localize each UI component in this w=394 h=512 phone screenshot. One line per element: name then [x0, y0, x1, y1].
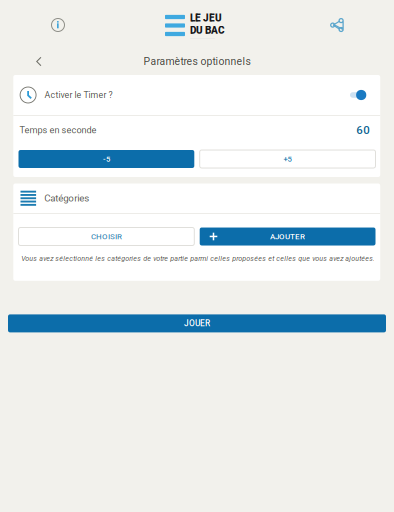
staticText: DU BAC — [190, 24, 225, 36]
staticText: LE JEU — [190, 12, 222, 24]
staticText: -5 — [103, 154, 110, 164]
staticText: ························· — [190, 36, 215, 41]
button[interactable]: Partager — [313, 1, 361, 49]
staticText: CHOISIR — [91, 232, 122, 241]
staticText: Vous avez sélectionné les catégories de … — [21, 254, 375, 263]
button[interactable]: Retour — [26, 48, 52, 75]
staticText: Activer le Timer ? — [44, 90, 112, 100]
button[interactable]: -5 — [18, 150, 194, 168]
button[interactable]: Informations — [34, 1, 82, 49]
button[interactable]: JOUER — [8, 314, 386, 332]
button[interactable]: +5 — [200, 150, 375, 168]
staticText: JOUER — [184, 318, 210, 328]
staticText: 60 — [356, 123, 370, 137]
staticText: Temps en seconde — [20, 125, 97, 135]
staticText: Catégories — [44, 192, 89, 204]
button[interactable]: Activer le Timer — [345, 85, 369, 105]
staticText: +5 — [284, 154, 292, 164]
button[interactable]: AJOUTER — [200, 227, 375, 245]
button[interactable]: CHOISIR — [18, 227, 194, 245]
staticText: AJOUTER — [270, 232, 305, 241]
staticText: Paramètres optionnels — [143, 55, 250, 68]
